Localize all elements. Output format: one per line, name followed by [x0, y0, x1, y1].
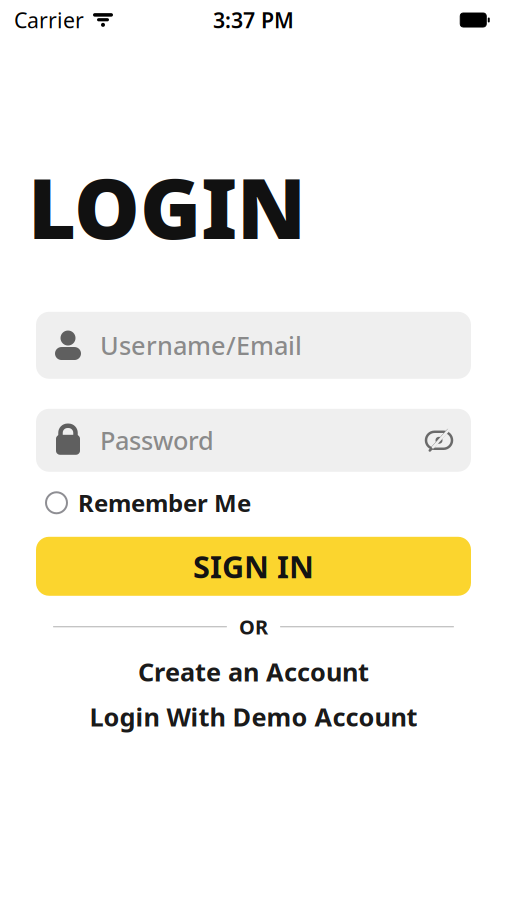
button[interactable]: Remember Me	[46, 486, 471, 520]
staticText: Create an Account	[138, 655, 369, 689]
staticText: Login With Demo Account	[89, 700, 417, 734]
button[interactable]: Create an Account	[36, 655, 471, 689]
staticText: Carrier	[14, 6, 84, 34]
button[interactable]: Show password	[407, 420, 471, 460]
staticText: SIGN IN	[193, 546, 314, 587]
button[interactable]: Login With Demo Account	[36, 700, 471, 734]
staticText: Password	[100, 423, 214, 457]
staticText: Username/Email	[100, 328, 302, 362]
button[interactable]: Username/Email	[36, 312, 471, 379]
staticText: Remember Me	[78, 487, 251, 519]
staticText: 3:37 PM	[213, 6, 294, 34]
staticText: LOGIN	[28, 152, 306, 262]
staticText: OR	[239, 613, 268, 640]
button[interactable]: SIGN IN	[36, 537, 471, 596]
